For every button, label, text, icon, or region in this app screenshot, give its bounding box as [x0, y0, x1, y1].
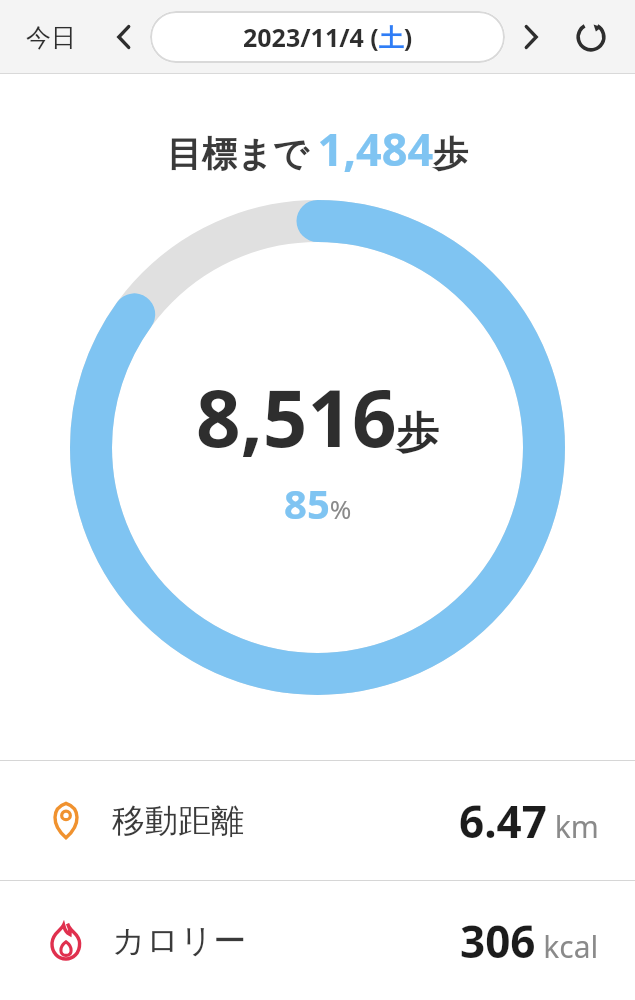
staticText: カロリー: [112, 920, 247, 962]
staticText: 8,516歩: [196, 364, 439, 470]
staticText: 306 kcal: [460, 911, 599, 971]
staticText: 目標まで 1,484歩: [0, 118, 635, 179]
button[interactable]: 2023/11/4 (土): [150, 11, 505, 63]
staticText: 2023/11/4 (土): [243, 20, 413, 54]
other: Calories: [44, 919, 88, 963]
button[interactable]: Previous day: [106, 19, 142, 55]
staticText: 今日: [26, 22, 76, 53]
button[interactable]: 今日: [22, 16, 80, 59]
staticText: 85%: [284, 476, 352, 530]
other: Distance: [44, 799, 88, 843]
staticText: 6.47 km: [459, 791, 599, 851]
button[interactable]: Calories: [0, 881, 635, 1000]
button[interactable]: Refresh: [569, 15, 613, 59]
button[interactable]: Next day: [513, 19, 549, 55]
staticText: 移動距離: [112, 800, 244, 842]
button[interactable]: Distance: [0, 761, 635, 880]
